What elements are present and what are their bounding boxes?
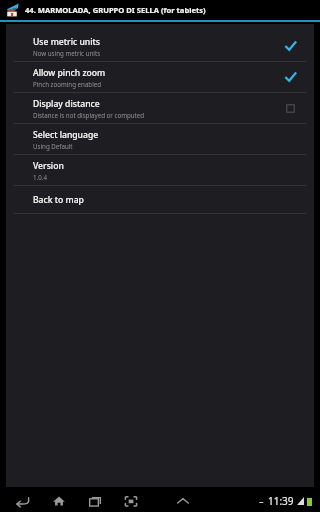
staticText: Use metric units [33,36,101,48]
staticText: 11:39 [268,494,294,508]
other: Enabled [285,41,296,52]
button[interactable]: Use metric units [6,31,314,61]
button[interactable]: Display distance [6,93,314,123]
button[interactable]: Back to map [6,186,314,213]
button[interactable]: Select language [6,124,314,154]
staticText: Now using metric units [33,49,101,57]
staticText: Display distance [33,98,100,110]
button[interactable]: Screenshot [118,489,144,512]
other: Disabled [285,103,296,114]
button[interactable]: Expand [170,489,196,512]
staticText: Version [33,160,64,172]
staticText: 44. MARMOLADA, GRUPPO DI SELLA (for tabl… [25,5,206,15]
staticText: Allow pinch zoom [33,67,106,79]
staticText: Distance is not displayed or computed [33,111,145,119]
button[interactable]: Allow pinch zoom [6,62,314,92]
button[interactable]: Recent apps [82,489,108,512]
button[interactable]: Version [6,155,314,185]
staticText: Back to map [33,194,84,206]
staticText: 1.0.4 [33,173,47,181]
button[interactable]: Home [46,489,72,512]
staticText: – [259,495,264,507]
staticText: Pinch zooming enabled [33,80,102,88]
staticText: Using Default [33,142,73,150]
button[interactable]: Back [10,489,36,512]
staticText: Select language [33,129,99,141]
other: Enabled [285,72,296,83]
